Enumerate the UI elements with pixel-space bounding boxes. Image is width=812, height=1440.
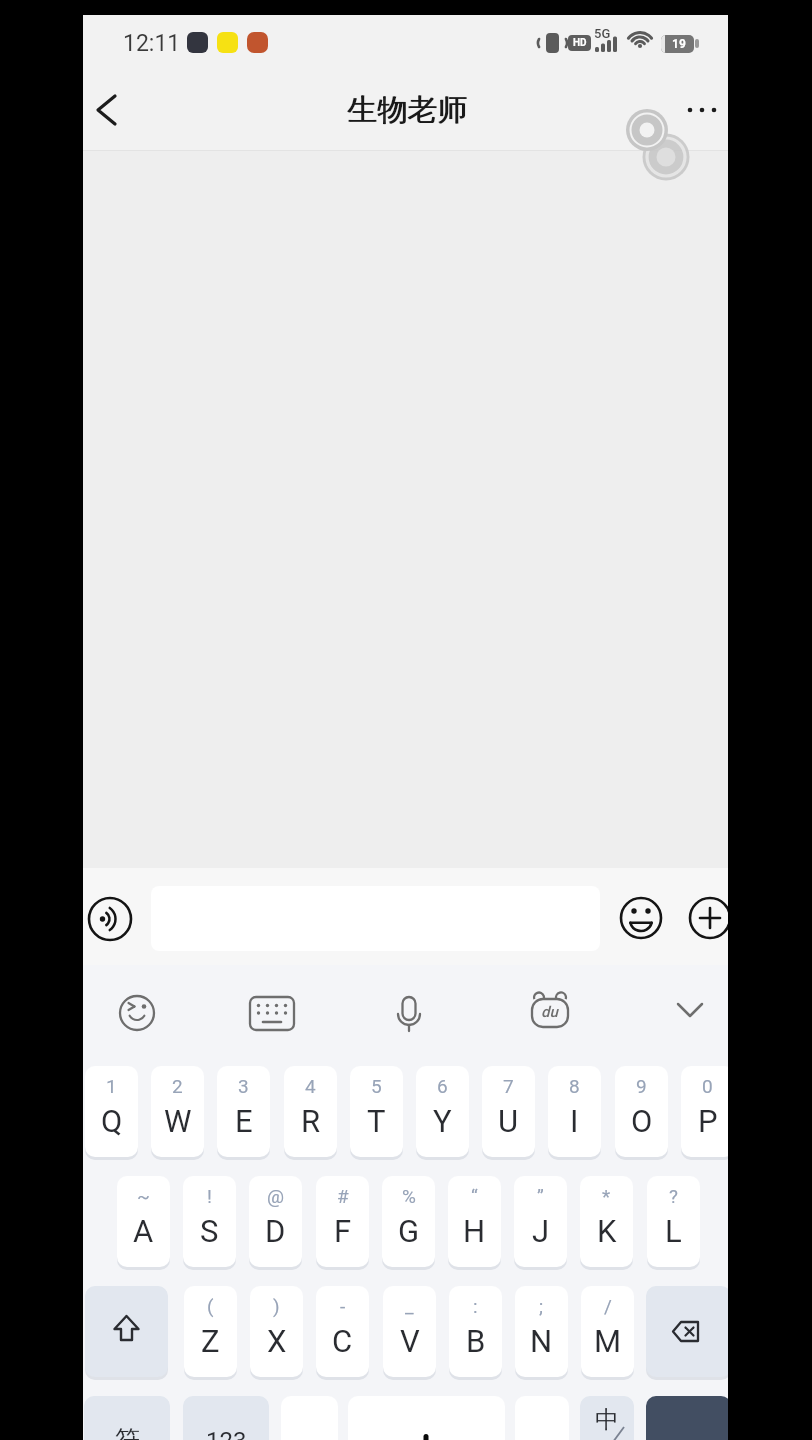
staticText: D [265, 1213, 286, 1249]
staticText: 生物老师 [348, 91, 468, 129]
button[interactable]: ; [515, 1286, 568, 1377]
button[interactable]: ( [184, 1286, 237, 1377]
staticText: Y [433, 1103, 452, 1139]
button[interactable]: @ [249, 1176, 302, 1267]
button[interactable]: 9 [615, 1066, 668, 1157]
staticText: * [602, 1185, 611, 1207]
staticText: / [604, 1295, 612, 1317]
staticText: I [570, 1103, 579, 1139]
staticText: HD [573, 37, 587, 49]
button[interactable]: 3 [217, 1066, 270, 1157]
staticText: ; [539, 1295, 544, 1317]
staticText: 0 [702, 1075, 713, 1097]
staticText: K [597, 1213, 617, 1249]
button[interactable] [646, 1396, 728, 1440]
staticText: ! [207, 1185, 212, 1207]
staticText: Q [101, 1103, 123, 1139]
staticText: V [400, 1323, 420, 1359]
button[interactable]: 123 [183, 1396, 269, 1440]
staticText: 符 [115, 1424, 140, 1440]
staticText: 6 [437, 1075, 448, 1097]
button[interactable] [532, 995, 568, 1031]
staticText: 5 [371, 1075, 382, 1097]
staticText: E [235, 1103, 253, 1139]
staticText: Z [201, 1323, 220, 1359]
button[interactable]: - [316, 1286, 369, 1377]
button[interactable] [646, 1286, 728, 1377]
staticText: H [463, 1213, 486, 1249]
button[interactable]: * [580, 1176, 633, 1267]
button[interactable] [620, 897, 662, 939]
staticText: X [267, 1323, 287, 1359]
button[interactable]: ) [250, 1286, 303, 1377]
button[interactable] [348, 1396, 505, 1440]
staticText: “ [471, 1185, 478, 1207]
button[interactable]: : [449, 1286, 502, 1377]
button[interactable] [89, 898, 131, 940]
button[interactable] [689, 897, 728, 939]
staticText: C [332, 1323, 353, 1359]
button[interactable]: 4 [284, 1066, 337, 1157]
button[interactable] [391, 995, 427, 1031]
button[interactable] [672, 995, 708, 1031]
staticText: 12:11 [123, 30, 181, 57]
button[interactable]: % [382, 1176, 435, 1267]
button[interactable]: ? [647, 1176, 700, 1267]
staticText: 中 [595, 1405, 619, 1435]
button[interactable]: _ [383, 1286, 436, 1377]
staticText: L [665, 1213, 682, 1249]
staticText: 5G [594, 26, 611, 41]
staticText: G [398, 1213, 420, 1249]
staticText: P [698, 1103, 718, 1139]
button[interactable]: ! [183, 1176, 236, 1267]
staticText: du [541, 1003, 558, 1021]
staticText: R [301, 1103, 321, 1139]
staticText: ) [273, 1295, 280, 1317]
button[interactable] [87, 89, 133, 133]
staticText: 7 [503, 1075, 514, 1097]
staticText: 3 [238, 1075, 249, 1097]
button[interactable]: “ [448, 1176, 501, 1267]
staticText: - [340, 1295, 346, 1317]
button[interactable]: ~ [117, 1176, 170, 1267]
staticText: 19 [672, 37, 686, 51]
staticText: 9 [636, 1075, 647, 1097]
button[interactable] [678, 95, 726, 125]
staticText: 1 [106, 1075, 117, 1097]
button[interactable] [119, 995, 155, 1031]
staticText: 8 [569, 1075, 580, 1097]
button[interactable]: 1 [85, 1066, 138, 1157]
button[interactable]: 符 [84, 1396, 170, 1440]
staticText: 生物老师 [347, 91, 467, 129]
button[interactable]: 5 [350, 1066, 403, 1157]
staticText: : [473, 1295, 478, 1317]
staticText: U [498, 1103, 519, 1139]
staticText: A [133, 1213, 154, 1249]
staticText: 123 [206, 1427, 247, 1440]
button[interactable]: 2 [151, 1066, 204, 1157]
button[interactable]: # [316, 1176, 369, 1267]
button[interactable] [85, 1286, 168, 1377]
button[interactable]: 0 [681, 1066, 728, 1157]
staticText: ~ [137, 1185, 150, 1207]
staticText: O [631, 1103, 653, 1139]
staticText: N [530, 1323, 553, 1359]
button[interactable]: ” [514, 1176, 567, 1267]
button[interactable]: 6 [416, 1066, 469, 1157]
button[interactable]: 8 [548, 1066, 601, 1157]
staticText: B [466, 1323, 486, 1359]
staticText: W [164, 1103, 192, 1139]
staticText: 2 [172, 1075, 183, 1097]
staticText: % [402, 1185, 416, 1207]
staticText: S [200, 1213, 219, 1249]
staticText: _ [405, 1295, 414, 1317]
button[interactable]: 7 [482, 1066, 535, 1157]
staticText: 4 [305, 1075, 316, 1097]
button[interactable] [254, 995, 290, 1031]
staticText: # [337, 1185, 349, 1207]
button[interactable]: 中 [580, 1396, 634, 1440]
button[interactable]: / [581, 1286, 634, 1377]
